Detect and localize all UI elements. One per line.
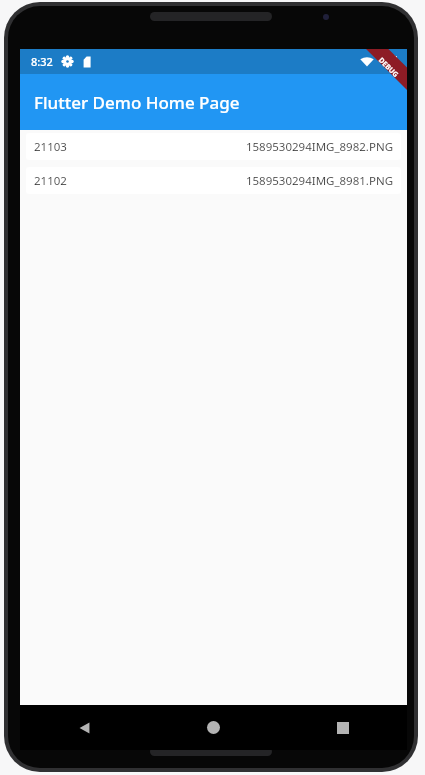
button[interactable]: 21102 [26, 167, 401, 194]
staticText: 1589530294IMG_8981.PNG [245, 173, 393, 189]
staticText: 21102 [34, 173, 67, 189]
staticText: 21103 [34, 139, 67, 155]
button[interactable]: Back [20, 705, 149, 750]
staticText: 8:32 [31, 54, 53, 69]
staticText: 1589530294IMG_8982.PNG [245, 139, 393, 155]
staticText: DEBUG [376, 56, 401, 80]
staticText: Flutter Demo Home Page [34, 91, 240, 114]
button[interactable]: Recent apps [278, 705, 407, 750]
button[interactable]: Home [149, 705, 278, 750]
button[interactable]: 21103 [26, 133, 401, 160]
